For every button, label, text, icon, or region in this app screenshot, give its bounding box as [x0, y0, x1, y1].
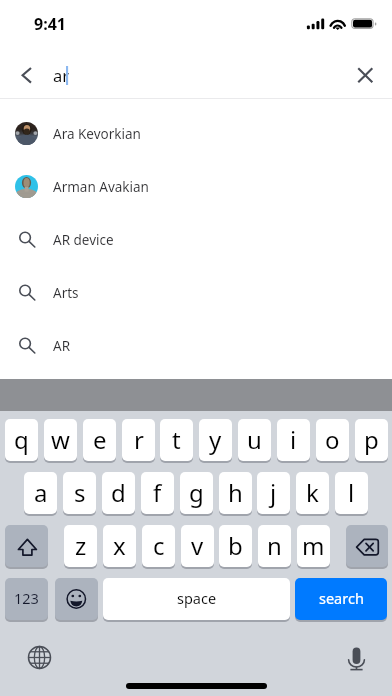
- button[interactable]: k: [296, 472, 329, 514]
- button[interactable]: 123: [5, 578, 48, 620]
- button[interactable]: c: [142, 525, 175, 567]
- staticText: 9:41: [34, 13, 66, 35]
- staticText: b: [228, 529, 243, 562]
- staticText: s: [74, 476, 86, 509]
- button[interactable]: o: [316, 419, 349, 461]
- button[interactable]: w: [44, 419, 77, 461]
- button[interactable]: l: [335, 472, 368, 514]
- button[interactable]: d: [102, 472, 135, 514]
- staticText: o: [325, 423, 340, 456]
- button[interactable]: y: [199, 419, 232, 461]
- button[interactable]: q: [5, 419, 38, 461]
- staticText: Arman Avakian: [53, 178, 149, 196]
- button[interactable]: b: [219, 525, 252, 567]
- button[interactable]: search: [295, 578, 387, 620]
- staticText: Arts: [53, 284, 79, 302]
- button[interactable]: Ara Kevorkian: [0, 107, 392, 160]
- button[interactable]: Arts: [0, 266, 392, 319]
- staticText: e: [93, 423, 107, 456]
- button[interactable]: f: [141, 472, 174, 514]
- staticText: t: [172, 423, 181, 456]
- button[interactable]: u: [238, 419, 271, 461]
- button[interactable]: Backspace: [346, 525, 388, 567]
- button[interactable]: Switch keyboard: [27, 645, 52, 670]
- button[interactable]: space: [103, 578, 290, 620]
- staticText: f: [153, 476, 162, 509]
- button[interactable]: Dictate: [344, 645, 369, 670]
- staticText: i: [290, 423, 297, 456]
- staticText: k: [306, 476, 319, 509]
- button[interactable]: s: [63, 472, 96, 514]
- button[interactable]: z: [64, 525, 97, 567]
- button[interactable]: AR device: [0, 213, 392, 266]
- button[interactable]: p: [355, 419, 388, 461]
- staticText: Ara Kevorkian: [53, 125, 141, 143]
- button[interactable]: n: [258, 525, 291, 567]
- staticText: d: [111, 476, 126, 509]
- button[interactable]: AR: [0, 319, 392, 372]
- staticText: z: [75, 529, 87, 562]
- staticText: l: [348, 476, 355, 509]
- staticText: u: [247, 423, 262, 456]
- staticText: a: [34, 476, 48, 509]
- button[interactable]: r: [122, 419, 155, 461]
- staticText: m: [302, 529, 325, 562]
- staticText: h: [228, 476, 243, 509]
- staticText: c: [153, 529, 165, 562]
- staticText: n: [267, 529, 282, 562]
- staticText: x: [113, 529, 126, 562]
- staticText: w: [51, 423, 70, 456]
- staticText: j: [270, 476, 277, 509]
- staticText: space: [177, 588, 217, 608]
- button[interactable]: a: [24, 472, 57, 514]
- staticText: AR: [53, 337, 71, 355]
- button[interactable]: h: [219, 472, 252, 514]
- staticText: g: [189, 476, 204, 509]
- staticText: y: [209, 423, 222, 456]
- button[interactable]: v: [181, 525, 214, 567]
- button[interactable]: Shift: [5, 525, 48, 567]
- button[interactable]: j: [257, 472, 290, 514]
- button[interactable]: Back: [8, 57, 45, 94]
- button[interactable]: Clear search: [347, 57, 384, 94]
- staticText: q: [14, 423, 29, 456]
- button[interactable]: g: [180, 472, 213, 514]
- button[interactable]: Arman Avakian: [0, 160, 392, 213]
- staticText: v: [191, 529, 204, 562]
- button[interactable]: i: [277, 419, 310, 461]
- button[interactable]: m: [297, 525, 330, 567]
- button[interactable]: e: [83, 419, 116, 461]
- staticText: ar: [53, 64, 70, 86]
- staticText: 123: [14, 588, 39, 608]
- button[interactable]: t: [160, 419, 193, 461]
- button[interactable]: Emoji: [55, 578, 98, 620]
- staticText: search: [319, 588, 364, 608]
- button[interactable]: x: [103, 525, 136, 567]
- staticText: p: [364, 423, 379, 456]
- staticText: r: [134, 423, 144, 456]
- staticText: AR device: [53, 231, 114, 249]
